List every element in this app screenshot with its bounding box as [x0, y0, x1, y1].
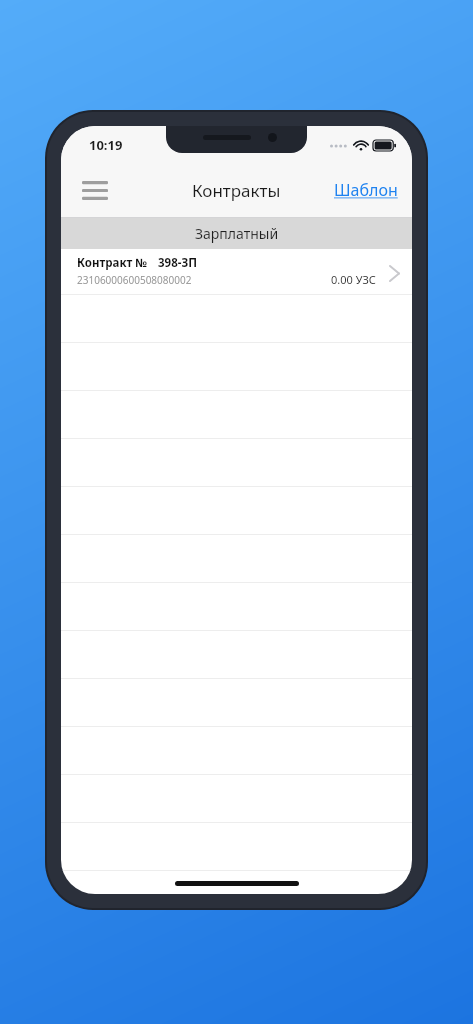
staticText: 398-ЗП — [158, 255, 197, 271]
staticText: Контракт № — [77, 255, 148, 271]
button[interactable]: Menu — [71, 168, 119, 212]
staticText: 10:19 — [89, 136, 123, 154]
staticText: 0.00 УЗС — [331, 272, 376, 287]
staticText: Зарплатный — [195, 224, 279, 243]
button[interactable]: Шаблон — [320, 169, 412, 211]
staticText: Контракты — [192, 179, 281, 202]
staticText: Шаблон — [334, 179, 398, 201]
button[interactable]: Контракт № — [61, 249, 412, 295]
button[interactable] — [61, 823, 412, 871]
staticText: 23106000600508080002 — [77, 273, 192, 287]
